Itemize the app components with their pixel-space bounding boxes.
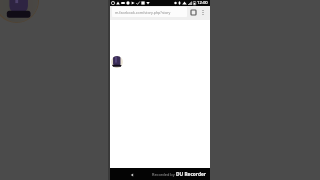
button[interactable]: Tabs xyxy=(188,7,198,17)
staticText: Recorded by xyxy=(152,172,175,177)
staticText: 12:00 xyxy=(197,0,208,6)
button[interactable]: Back xyxy=(128,171,135,178)
button[interactable]: More options xyxy=(198,7,208,17)
button[interactable]: m.facebook.com/story.php?story xyxy=(112,7,187,17)
staticText: DU Recorder xyxy=(176,171,206,178)
staticText: m.facebook.com/story.php?story xyxy=(115,10,171,15)
